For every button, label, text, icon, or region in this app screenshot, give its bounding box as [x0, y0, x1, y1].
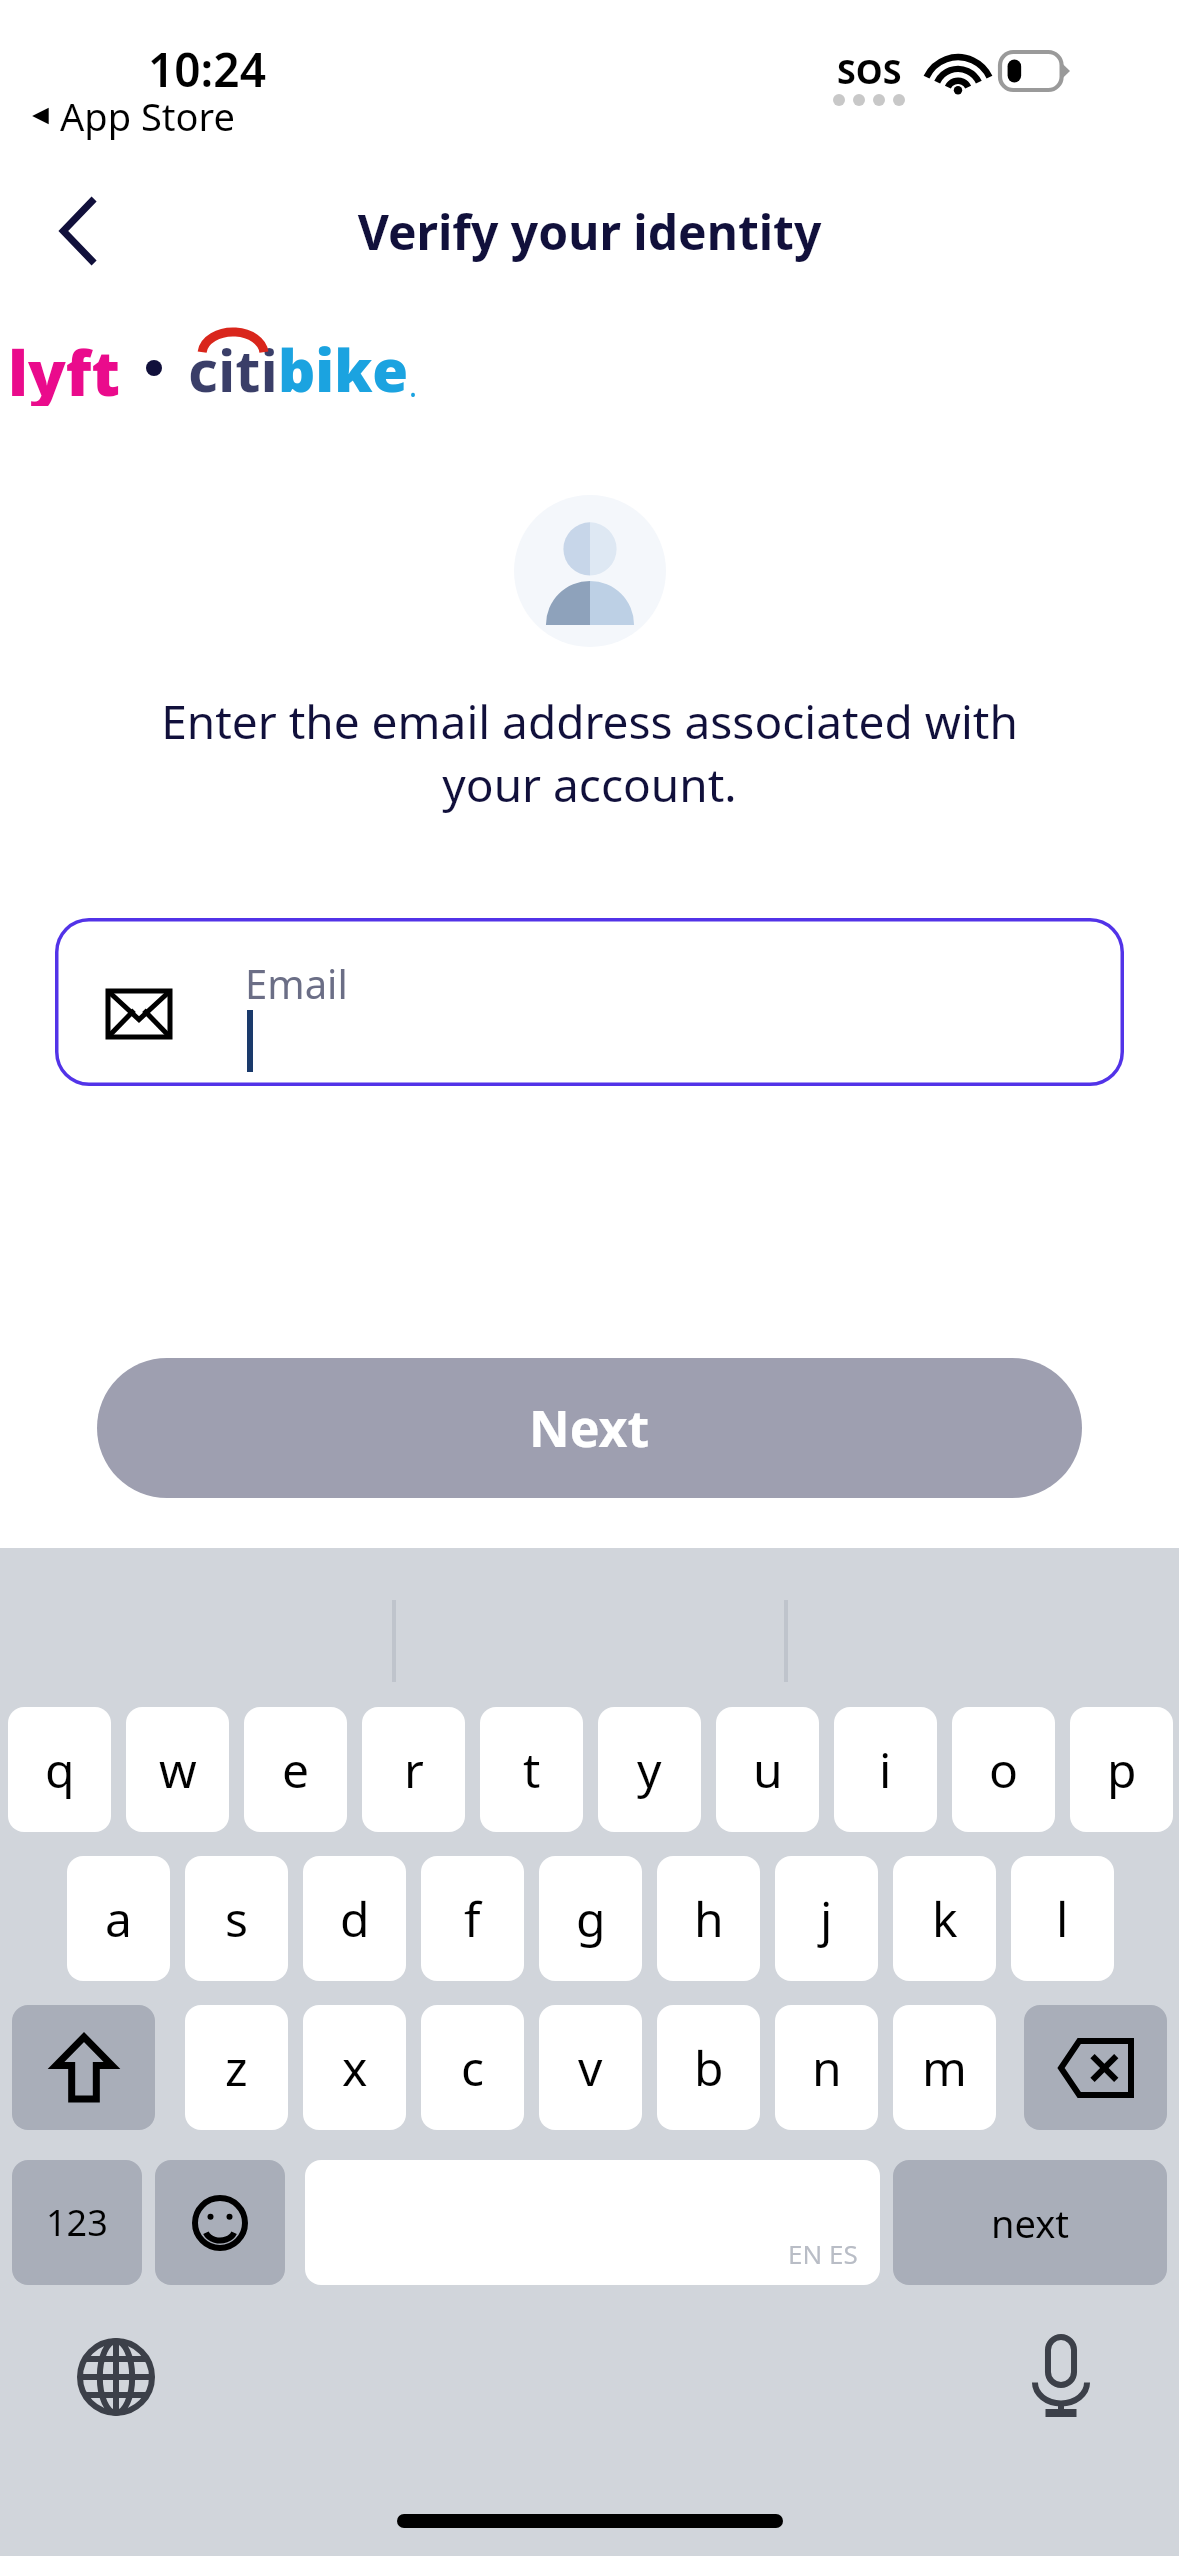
staticText: n: [812, 2035, 842, 2100]
staticText: i: [879, 1737, 892, 1802]
staticText: j: [820, 1886, 833, 1951]
staticText: citi: [188, 330, 278, 406]
button[interactable]: Back: [32, 183, 128, 279]
button[interactable]: Emoji: [155, 2160, 285, 2285]
button[interactable]: Next: [97, 1358, 1082, 1498]
staticText: p: [1107, 1737, 1137, 1802]
staticText: .: [409, 365, 418, 406]
button[interactable]: i: [834, 1707, 937, 1832]
staticText: v: [578, 2035, 603, 2100]
staticText: SOS: [837, 48, 902, 94]
staticText: g: [576, 1886, 606, 1951]
staticText: a: [105, 1886, 132, 1951]
button[interactable]: e: [244, 1707, 347, 1832]
button[interactable]: Numbers: [12, 2160, 142, 2285]
staticText: App Store: [60, 90, 235, 142]
staticText: Verify your identity: [0, 199, 1179, 264]
staticText: m: [922, 2035, 967, 2100]
button[interactable]: g: [539, 1856, 642, 1981]
button[interactable]: v: [539, 2005, 642, 2130]
button[interactable]: d: [303, 1856, 406, 1981]
staticText: c: [461, 2035, 485, 2100]
staticText: z: [225, 2035, 248, 2100]
button[interactable]: EN ES: [305, 2160, 880, 2285]
staticText: k: [932, 1886, 958, 1951]
button[interactable]: m: [893, 2005, 996, 2130]
staticText: y: [637, 1737, 662, 1802]
button[interactable]: u: [716, 1707, 819, 1832]
button[interactable]: Change keyboard: [72, 2333, 160, 2421]
staticText: Enter the email address associated with …: [110, 690, 1069, 815]
button[interactable]: Email: [55, 918, 1124, 1086]
button[interactable]: k: [893, 1856, 996, 1981]
button[interactable]: f: [421, 1856, 524, 1981]
staticText: lyft: [8, 330, 120, 406]
button[interactable]: r: [362, 1707, 465, 1832]
staticText: l: [1056, 1886, 1069, 1951]
staticText: 10:24: [148, 38, 266, 101]
staticText: 123: [46, 2198, 108, 2247]
staticText: h: [694, 1886, 724, 1951]
staticText: b: [694, 2035, 724, 2100]
staticText: e: [282, 1737, 310, 1802]
staticText: w: [159, 1737, 197, 1802]
button[interactable]: p: [1070, 1707, 1173, 1832]
staticText: Next: [529, 1394, 650, 1462]
staticText: d: [340, 1886, 370, 1951]
button[interactable]: x: [303, 2005, 406, 2130]
staticText: s: [225, 1886, 248, 1951]
button[interactable]: n: [775, 2005, 878, 2130]
staticText: q: [45, 1737, 75, 1802]
staticText: o: [989, 1737, 1019, 1802]
button[interactable]: o: [952, 1707, 1055, 1832]
staticText: r: [404, 1737, 424, 1802]
button[interactable]: next: [893, 2160, 1167, 2285]
staticText: u: [753, 1737, 783, 1802]
button[interactable]: h: [657, 1856, 760, 1981]
staticText: bike: [278, 330, 409, 406]
button[interactable]: y: [598, 1707, 701, 1832]
button[interactable]: q: [8, 1707, 111, 1832]
button[interactable]: j: [775, 1856, 878, 1981]
button[interactable]: c: [421, 2005, 524, 2130]
button[interactable]: Shift: [12, 2005, 155, 2130]
button[interactable]: t: [480, 1707, 583, 1832]
staticText: next: [991, 2197, 1069, 2249]
button[interactable]: a: [67, 1856, 170, 1981]
staticText: f: [464, 1886, 481, 1951]
staticText: Email: [245, 956, 348, 1010]
button[interactable]: w: [126, 1707, 229, 1832]
button[interactable]: l: [1011, 1856, 1114, 1981]
staticText: t: [523, 1737, 541, 1802]
button[interactable]: z: [185, 2005, 288, 2130]
button[interactable]: s: [185, 1856, 288, 1981]
button[interactable]: Dictate: [1017, 2333, 1105, 2421]
staticText: x: [342, 2035, 368, 2100]
staticText: EN ES: [788, 2236, 858, 2271]
button[interactable]: b: [657, 2005, 760, 2130]
button[interactable]: Backspace: [1024, 2005, 1167, 2130]
